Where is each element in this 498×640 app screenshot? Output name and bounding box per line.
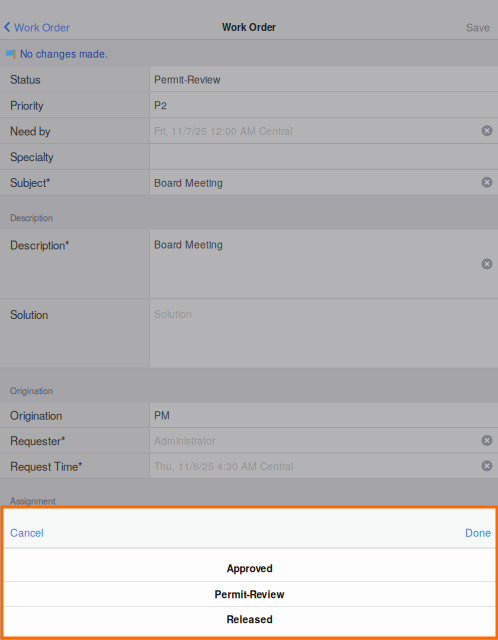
button[interactable]: Clear text — [477, 121, 497, 141]
staticText: PM — [154, 408, 170, 422]
button[interactable]: Done — [465, 507, 497, 548]
button[interactable]: Approved — [2, 549, 497, 581]
button[interactable]: Request Time* — [0, 454, 498, 479]
staticText: Description — [10, 211, 53, 224]
staticText: Work Order — [222, 20, 276, 34]
staticText: Status — [10, 71, 41, 87]
button[interactable]: Clear text — [477, 456, 497, 476]
staticText: Description* — [10, 237, 69, 253]
staticText: Permit-Review — [214, 587, 284, 601]
staticText: Requester* — [10, 432, 65, 448]
staticText: Cancel — [10, 525, 43, 540]
button[interactable]: Subject* — [0, 170, 498, 196]
button[interactable]: Released — [2, 607, 497, 631]
staticText: Fri, 11/7/25 12:00 AM Central — [154, 123, 292, 138]
button[interactable]: Requester* — [0, 428, 498, 453]
staticText: Origination — [10, 384, 53, 397]
staticText: Work Order — [14, 19, 70, 35]
staticText: Request Time* — [10, 458, 82, 474]
button[interactable]: Need by — [0, 118, 498, 144]
button[interactable]: Permit-Review — [2, 582, 497, 606]
staticText: Board Meeting — [154, 237, 223, 251]
staticText: No changes made. — [20, 46, 108, 60]
staticText: Permit-Review — [154, 72, 220, 86]
button[interactable]: Origination — [0, 403, 498, 428]
button[interactable]: Description* — [0, 230, 498, 299]
staticText: Subject* — [10, 174, 50, 190]
staticText: P2 — [154, 97, 167, 112]
staticText: Specialty — [10, 148, 54, 164]
staticText: Solution — [154, 306, 192, 321]
button[interactable]: Status — [0, 67, 498, 92]
staticText: Solution — [10, 306, 48, 322]
staticText: Priority — [10, 97, 44, 113]
staticText: Need by — [10, 123, 51, 139]
staticText: Done — [465, 525, 491, 540]
staticText: Board Meeting — [154, 175, 223, 190]
button[interactable]: Cancel — [2, 507, 43, 548]
staticText: Released — [226, 612, 272, 626]
staticText: Thu, 11/6/25 4:30 AM Central — [154, 458, 293, 473]
button[interactable]: Priority — [0, 92, 498, 118]
staticText: Assignment — [10, 494, 55, 507]
staticText: Administrator — [154, 433, 215, 448]
staticText: Save — [466, 19, 490, 35]
staticText: Approved — [226, 561, 272, 575]
button[interactable]: Specialty — [0, 144, 498, 170]
button[interactable]: Clear text — [477, 254, 497, 274]
button[interactable]: Save — [458, 14, 498, 40]
staticText: Origination — [10, 407, 62, 423]
button[interactable]: Work Order — [0, 14, 78, 40]
button[interactable]: Solution — [0, 299, 498, 369]
button[interactable]: Clear text — [477, 172, 497, 192]
button[interactable]: Clear text — [477, 430, 497, 450]
